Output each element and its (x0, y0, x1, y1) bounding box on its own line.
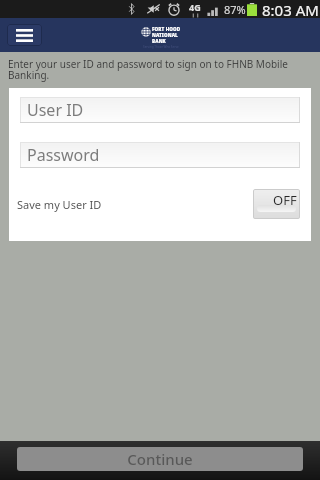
staticText: Enter your user ID and password to sign … (8, 57, 296, 82)
staticText: NATIONAL (152, 32, 178, 38)
staticText: Serving Those Who Serve (143, 45, 179, 49)
staticText: 87% (224, 2, 246, 17)
button[interactable]: Save my User ID toggle, off (253, 189, 300, 219)
staticText: OFF (273, 191, 297, 209)
staticText: 4G (189, 1, 201, 13)
staticText: Password (27, 144, 100, 166)
button[interactable]: Continue (17, 447, 303, 471)
staticText: BANK (152, 38, 166, 44)
button[interactable]: Password (20, 142, 300, 168)
staticText: Continue (127, 449, 193, 469)
staticText: Save my User ID (17, 197, 102, 212)
button[interactable]: Menu (7, 24, 42, 46)
staticText: 8:03 AM (262, 0, 319, 18)
staticText: User ID (27, 99, 84, 121)
staticText: FORT HOOD (152, 26, 181, 32)
button[interactable]: User ID (20, 97, 300, 123)
